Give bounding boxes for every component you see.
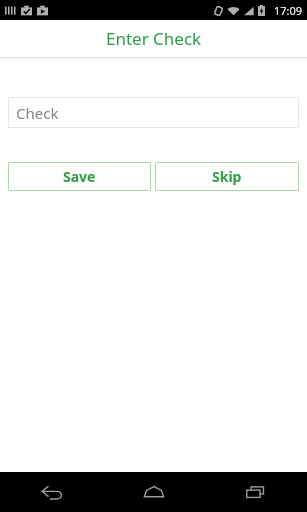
- button[interactable]: Back: [0, 472, 103, 512]
- staticText: Skip: [212, 167, 242, 186]
- staticText: Check: [16, 103, 59, 123]
- button[interactable]: Save: [8, 162, 151, 191]
- button[interactable]: Home: [103, 472, 205, 512]
- button[interactable]: Skip: [155, 162, 299, 191]
- staticText: Save: [63, 167, 96, 186]
- staticText: Enter Check: [106, 27, 202, 50]
- button[interactable]: Check: [8, 97, 299, 128]
- button[interactable]: Recent apps: [205, 472, 307, 512]
- staticText: 17:09: [274, 3, 303, 18]
